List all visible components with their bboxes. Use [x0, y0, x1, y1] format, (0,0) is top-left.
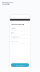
staticText: Get a quote — [15, 64, 24, 66]
staticText: Pay on time — [2, 3, 10, 5]
staticText: Keep your pet's — [2, 1, 14, 3]
staticText: Luna — [11, 28, 15, 29]
button[interactable]: Species — [9, 32, 31, 36]
staticText: 12 Mar 2021 — [11, 36, 20, 38]
staticText: SW1A 1AA — [11, 40, 18, 42]
button[interactable]: Postcode — [9, 40, 31, 44]
button[interactable]: Get a quote — [11, 63, 29, 67]
button[interactable]: Date of birth — [9, 36, 31, 40]
staticText: Your pet's details — [11, 24, 24, 25]
button[interactable]: Pet name — [9, 27, 31, 32]
staticText: Dog — [11, 32, 14, 34]
